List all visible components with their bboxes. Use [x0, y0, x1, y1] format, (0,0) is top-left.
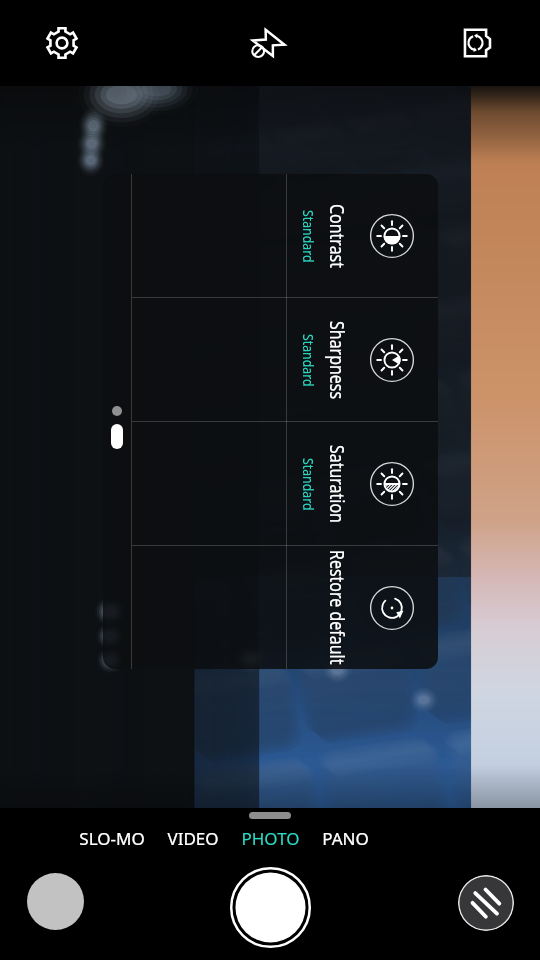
staticText: SLO-MO: [79, 827, 145, 847]
button[interactable]: Sharpness: [132, 298, 438, 421]
staticText: Standard: [299, 210, 318, 263]
button[interactable]: PANO: [311, 823, 380, 851]
staticText: Contrast: [324, 204, 350, 269]
button[interactable]: Saturation: [132, 422, 438, 545]
staticText: Standard: [299, 458, 318, 511]
button[interactable]: Shutter: [230, 867, 311, 948]
button[interactable]: Restore default: [132, 546, 438, 669]
button[interactable]: Flash off: [227, 0, 311, 86]
button[interactable]: Filters: [458, 875, 514, 931]
button[interactable]: SLO-MO: [68, 823, 156, 851]
button[interactable]: Gallery: [27, 873, 84, 930]
button[interactable]: Switch camera: [436, 0, 520, 86]
staticText: Saturation: [324, 445, 350, 523]
staticText: PANO: [322, 827, 369, 847]
button[interactable]: Settings: [20, 0, 104, 86]
button[interactable]: PHOTO: [230, 823, 311, 851]
staticText: Restore default: [324, 550, 350, 665]
staticText: Sharpness: [324, 321, 350, 400]
staticText: PHOTO: [241, 827, 300, 847]
button[interactable]: Contrast: [132, 174, 438, 297]
staticText: VIDEO: [167, 827, 219, 847]
button[interactable]: VIDEO: [156, 823, 230, 851]
staticText: Standard: [299, 334, 318, 387]
